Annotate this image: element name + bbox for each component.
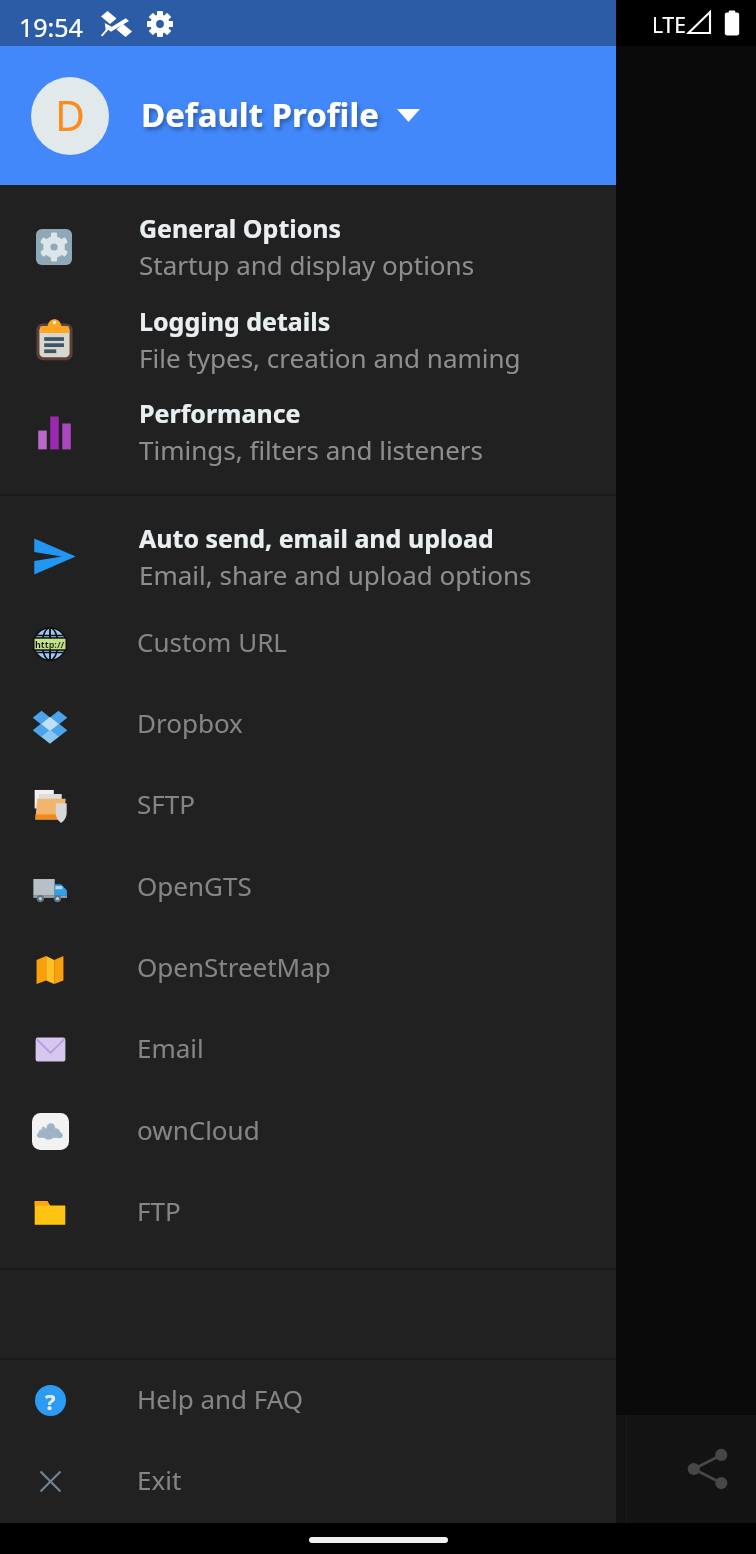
button[interactable]: D	[0, 46, 616, 185]
staticText: D	[55, 87, 85, 143]
staticText: OpenGTS	[137, 868, 252, 903]
button[interactable]: Share	[681, 1442, 734, 1496]
staticText: Dropbox	[137, 705, 243, 740]
button[interactable]: ?	[0, 1345, 616, 1426]
staticText: Custom URL	[137, 624, 287, 659]
staticText: Auto send, email and upload	[139, 521, 494, 555]
button[interactable]: Exit	[0, 1426, 616, 1507]
staticText: Help and FAQ	[137, 1381, 304, 1416]
staticText: ?	[45, 1386, 56, 1416]
button[interactable]: General Options	[0, 185, 616, 278]
staticText: SFTP	[137, 786, 195, 821]
staticText: Performance	[139, 396, 301, 430]
staticText: http://	[35, 638, 65, 650]
button[interactable]: http://	[0, 588, 616, 669]
staticText: FTP	[137, 1193, 181, 1228]
button[interactable]: ownCloud	[0, 1076, 616, 1157]
button[interactable]: SFTP	[0, 750, 616, 831]
staticText: Startup and display options	[139, 247, 475, 282]
button[interactable]: Auto send, email and upload	[0, 495, 616, 588]
staticText: General Options	[139, 211, 342, 245]
button[interactable]: Dropbox	[0, 669, 616, 750]
staticText: Email, share and upload options	[139, 557, 532, 592]
staticText: LTE	[652, 11, 686, 40]
staticText: Logging details	[139, 304, 331, 338]
button[interactable]: Logging details	[0, 278, 616, 370]
button[interactable]: Email	[0, 994, 616, 1075]
staticText: OpenStreetMap	[137, 949, 331, 984]
staticText: ownCloud	[137, 1112, 260, 1147]
staticText: File types, creation and naming	[139, 340, 521, 375]
staticText: Timings, filters and listeners	[139, 432, 484, 467]
button[interactable]: FTP	[0, 1157, 616, 1238]
staticText: Exit	[137, 1462, 182, 1497]
staticText: Default Profile	[141, 92, 379, 137]
button[interactable]: Performance	[0, 370, 616, 463]
button[interactable]: OpenGTS	[0, 832, 616, 913]
staticText: 19:54	[19, 10, 83, 44]
staticText: Email	[137, 1030, 204, 1065]
button[interactable]: OpenStreetMap	[0, 913, 616, 994]
